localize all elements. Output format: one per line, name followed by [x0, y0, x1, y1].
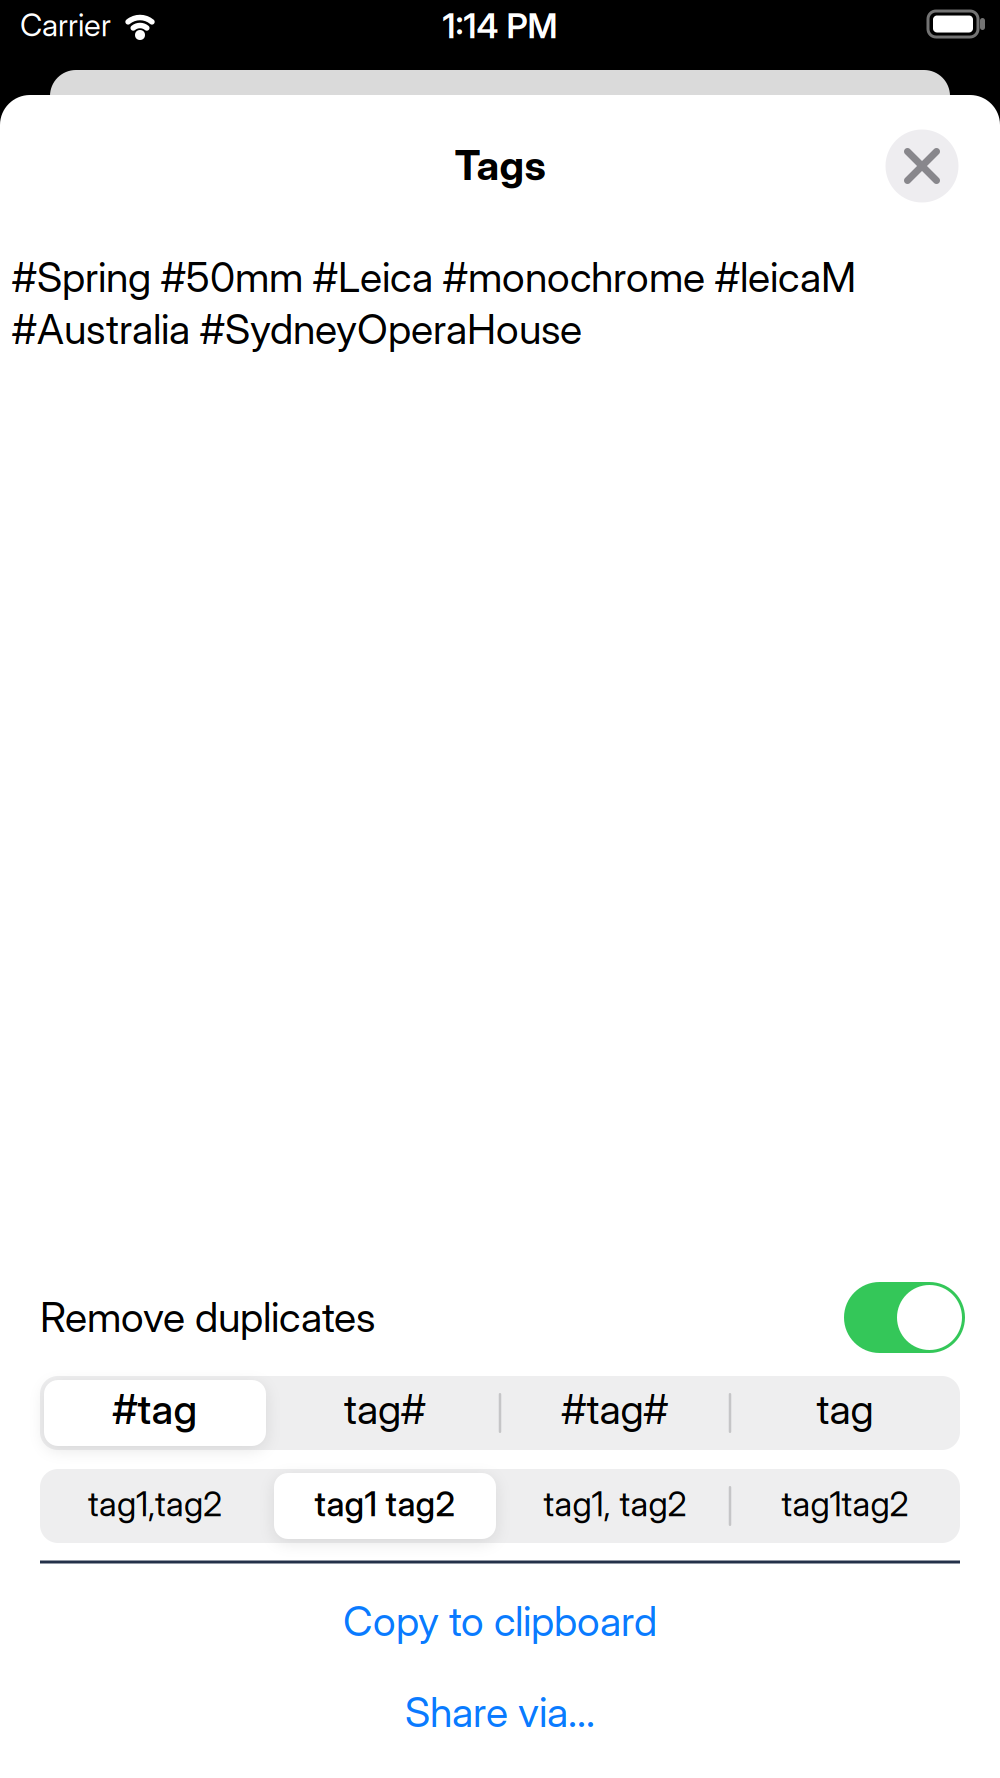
button[interactable]: tag1tag2 — [730, 1467, 960, 1541]
button[interactable]: Remove duplicates — [844, 1282, 965, 1353]
staticText: #tag# — [561, 1384, 668, 1434]
staticText: tag# — [344, 1384, 426, 1434]
staticText: #tag — [112, 1384, 197, 1434]
button[interactable]: #tag# — [500, 1372, 730, 1446]
staticText: tag1,tag2 — [88, 1483, 222, 1524]
button[interactable]: tag1, tag2 — [500, 1467, 730, 1541]
staticText: tag — [816, 1384, 873, 1434]
staticText: tag1, tag2 — [543, 1483, 686, 1524]
button[interactable]: tag1 tag2 — [270, 1467, 500, 1541]
staticText: Share via... — [405, 1687, 595, 1737]
button[interactable]: Copy to clipboard — [343, 1596, 657, 1646]
button[interactable]: tag# — [270, 1372, 500, 1446]
staticText: tag1tag2 — [781, 1483, 908, 1524]
button[interactable]: Close — [885, 129, 958, 202]
staticText: Remove duplicates — [40, 1292, 375, 1342]
button[interactable]: Share via... — [405, 1687, 595, 1737]
staticText: 1:14 PM — [442, 5, 557, 46]
staticText: Copy to clipboard — [343, 1596, 657, 1646]
button[interactable]: tag1,tag2 — [40, 1467, 270, 1541]
staticText: #Australia #SydneyOperaHouse — [12, 304, 582, 354]
staticText: Carrier — [20, 6, 111, 44]
staticText: Tags — [454, 140, 545, 190]
button[interactable]: #tag — [40, 1372, 270, 1446]
staticText: tag1 tag2 — [314, 1483, 455, 1524]
staticText: #Spring #50mm #Leica #monochrome #leicaM — [12, 252, 856, 302]
button[interactable]: tag — [730, 1372, 960, 1446]
